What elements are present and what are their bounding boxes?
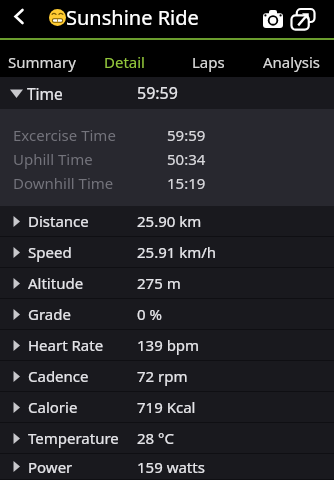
staticText: Distance bbox=[28, 211, 89, 231]
staticText: Time bbox=[27, 83, 63, 104]
staticText: 50:34 bbox=[167, 149, 206, 169]
staticText: Excercise Time bbox=[13, 125, 116, 145]
staticText: Speed bbox=[28, 242, 72, 262]
staticText: 25.91 km/h bbox=[137, 242, 217, 262]
staticText: 159 watts bbox=[137, 457, 205, 477]
staticText: Uphill Time bbox=[13, 149, 93, 169]
staticText: Cadence bbox=[28, 366, 89, 386]
button[interactable] bbox=[260, 6, 286, 32]
button[interactable]: Temperature bbox=[0, 423, 334, 454]
staticText: 25.90 km bbox=[137, 211, 202, 231]
staticText: Summary bbox=[8, 52, 76, 72]
button[interactable]: Heart Rate bbox=[0, 330, 334, 361]
staticText: Temperature bbox=[28, 428, 119, 448]
button[interactable] bbox=[289, 5, 317, 33]
staticText: Detail bbox=[104, 52, 145, 72]
staticText: Calorie bbox=[28, 397, 78, 417]
button[interactable]: Detail bbox=[83, 40, 166, 77]
button[interactable]: Laps bbox=[166, 40, 250, 77]
button[interactable]: Distance bbox=[0, 206, 334, 237]
button[interactable]: Power bbox=[0, 454, 334, 480]
button[interactable]: Cadence bbox=[0, 361, 334, 392]
staticText: 15:19 bbox=[167, 173, 206, 193]
staticText: Heart Rate bbox=[28, 335, 104, 355]
staticText: 59:59 bbox=[167, 125, 206, 145]
staticText: 275 m bbox=[137, 273, 181, 293]
button[interactable]: Time bbox=[0, 77, 334, 109]
staticText: 0 % bbox=[137, 304, 162, 324]
staticText: Laps bbox=[192, 52, 225, 72]
button[interactable]: Analysis bbox=[250, 40, 334, 77]
staticText: Analysis bbox=[263, 52, 321, 72]
button[interactable]: Speed bbox=[0, 237, 334, 268]
staticText: 59:59 bbox=[137, 82, 178, 104]
button[interactable]: Altitude bbox=[0, 268, 334, 299]
staticText: Power bbox=[28, 457, 73, 477]
staticText: Grade bbox=[28, 304, 71, 324]
staticText: Downhill Time bbox=[13, 173, 114, 193]
staticText: 72 rpm bbox=[137, 366, 188, 386]
button[interactable]: Grade bbox=[0, 299, 334, 330]
staticText: Altitude bbox=[28, 273, 84, 293]
button[interactable]: Calorie bbox=[0, 392, 334, 423]
staticText: 719 Kcal bbox=[137, 397, 196, 417]
button[interactable]: Summary bbox=[0, 40, 83, 77]
button[interactable] bbox=[8, 5, 30, 27]
staticText: 139 bpm bbox=[137, 335, 200, 355]
staticText: 28 °C bbox=[137, 428, 174, 448]
staticText: Sunshine Ride bbox=[66, 4, 199, 31]
